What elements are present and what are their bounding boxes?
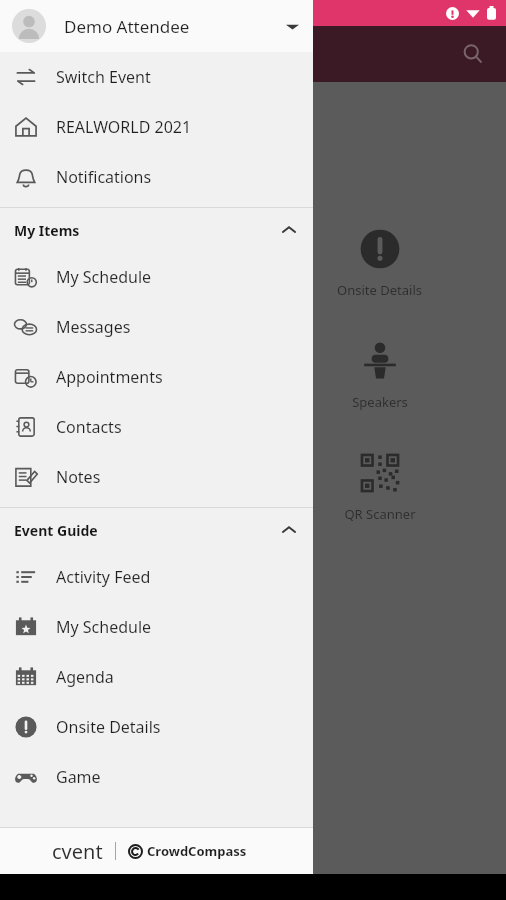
staticText: Onsite Details <box>337 281 422 299</box>
staticText: Messages <box>56 316 131 338</box>
button[interactable]: REALWORLD 2021 <box>0 102 313 152</box>
button[interactable]: Event Guide <box>0 508 313 552</box>
staticText: My Schedule <box>56 616 152 638</box>
button[interactable]: Onsite Details <box>0 702 313 752</box>
staticText: Appointments <box>56 366 163 388</box>
button[interactable]: Search <box>450 31 496 77</box>
button[interactable]: Game <box>0 752 313 802</box>
button[interactable]: Activity Feed <box>0 552 313 602</box>
button[interactable]: Demo Attendee <box>0 0 313 52</box>
staticText: Game <box>56 766 101 788</box>
staticText: cvent <box>52 838 103 865</box>
staticText: REALWORLD 2021 <box>56 116 192 138</box>
button[interactable]: My Schedule <box>0 602 313 652</box>
staticText: QR Scanner <box>344 505 416 523</box>
button[interactable]: Speakers <box>253 319 506 431</box>
button[interactable]: Notes <box>0 452 313 502</box>
button[interactable]: Attendees <box>0 319 253 431</box>
button[interactable]: Contacts <box>0 402 313 452</box>
staticText: 9:45 <box>12 4 38 22</box>
staticText: Agenda <box>103 281 150 299</box>
button[interactable]: Notifications <box>0 152 313 202</box>
staticText: REALWORLD 2021 <box>20 148 274 189</box>
staticText: Speakers <box>352 393 408 411</box>
button[interactable]: QR Scanner <box>253 431 506 543</box>
button[interactable]: About RealWorld <box>0 431 253 543</box>
button[interactable]: Agenda <box>0 207 253 319</box>
staticText: My Schedule <box>56 266 152 288</box>
button[interactable]: Onsite Details <box>253 207 506 319</box>
staticText: Notifications <box>56 166 152 188</box>
staticText: Event Guide <box>14 521 98 540</box>
staticText: Demo Attendee <box>64 15 190 38</box>
staticText: Contacts <box>56 416 122 438</box>
staticText: Onsite Details <box>56 716 161 738</box>
staticText: About RealWorld <box>95 496 158 532</box>
staticText: Activity Feed <box>56 566 151 588</box>
button[interactable]: Switch Event <box>0 52 313 102</box>
staticText: CrowdCompass <box>147 842 247 860</box>
staticText: Notes <box>56 466 101 488</box>
staticText: Switch Event <box>56 66 151 88</box>
button[interactable]: Agenda <box>0 652 313 702</box>
button[interactable]: My Schedule <box>0 252 313 302</box>
staticText: Agenda <box>56 666 114 688</box>
staticText: My Items <box>14 221 80 240</box>
button[interactable]: Messages <box>0 302 313 352</box>
button[interactable]: Appointments <box>0 352 313 402</box>
button[interactable]: My Items <box>0 208 313 252</box>
